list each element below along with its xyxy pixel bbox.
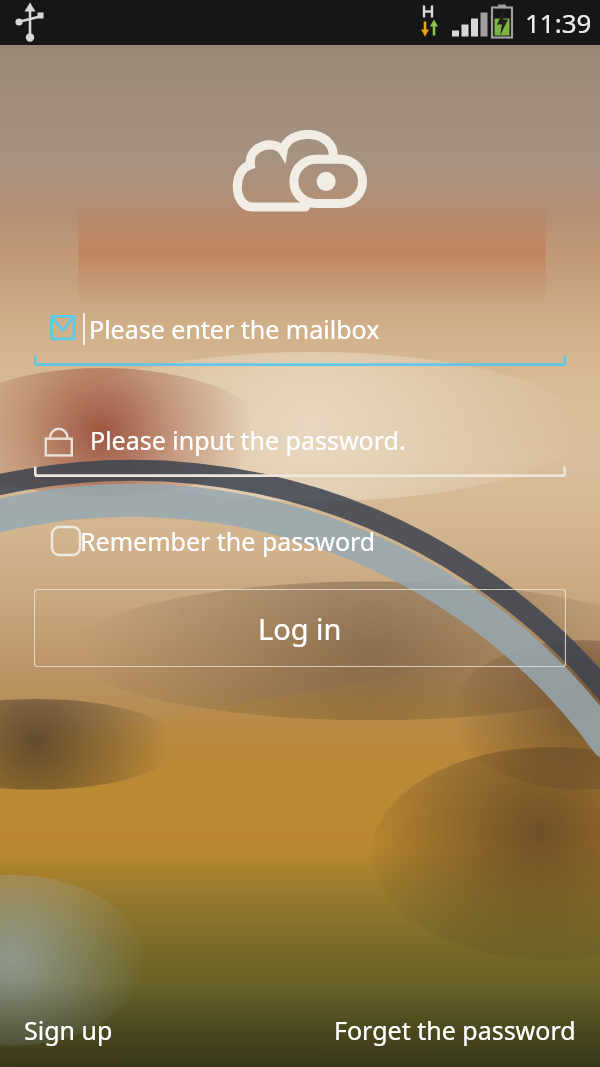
- button[interactable]: Remember the password: [34, 519, 376, 563]
- staticText: Please enter the mailbox: [89, 312, 380, 346]
- button[interactable]: Email: [34, 300, 566, 358]
- other: Email: [34, 312, 76, 346]
- staticText: Forget the password: [334, 1013, 576, 1047]
- other: Password: [34, 418, 76, 462]
- staticText: Log in: [258, 609, 342, 648]
- button[interactable]: Log in: [34, 589, 566, 667]
- button[interactable]: Password: [34, 411, 566, 469]
- staticText: Please input the password.: [90, 423, 406, 457]
- other: App logo: [232, 127, 368, 213]
- staticText: Sign up: [24, 1013, 113, 1047]
- staticText: 11:39: [525, 5, 592, 40]
- button[interactable]: Sign up: [0, 1005, 137, 1055]
- staticText: Remember the password: [80, 524, 376, 558]
- button[interactable]: Forget the password: [310, 1005, 600, 1055]
